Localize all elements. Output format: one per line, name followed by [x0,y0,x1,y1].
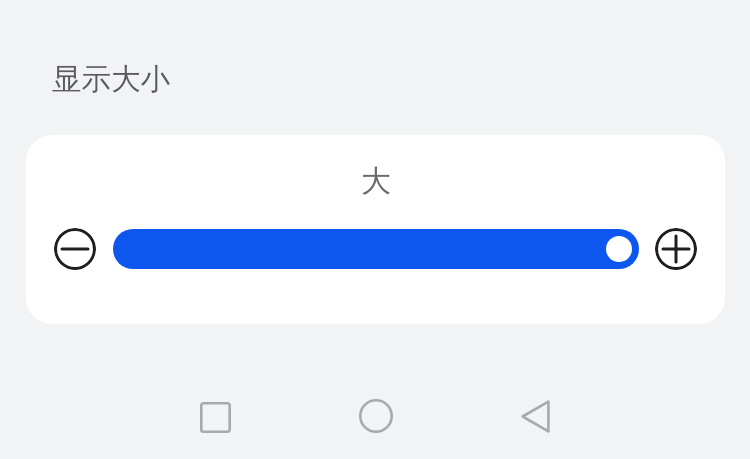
button[interactable]: Make display larger [655,228,697,270]
button[interactable]: Home [335,376,416,456]
staticText: 大 [361,162,391,200]
staticText: 显示大小 [52,61,170,98]
button[interactable]: Recent apps [175,377,256,457]
button[interactable]: Back [495,376,576,456]
button[interactable]: Make display smaller [54,228,96,270]
button[interactable]: Display size slider [113,229,639,269]
